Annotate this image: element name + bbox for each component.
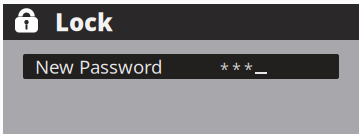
staticText: *	[244, 58, 253, 79]
staticText: *	[220, 58, 229, 79]
staticText: Lock	[55, 6, 113, 38]
staticText: New Password	[35, 54, 162, 79]
staticText: *	[232, 58, 241, 79]
button[interactable]: New Password	[23, 54, 339, 79]
